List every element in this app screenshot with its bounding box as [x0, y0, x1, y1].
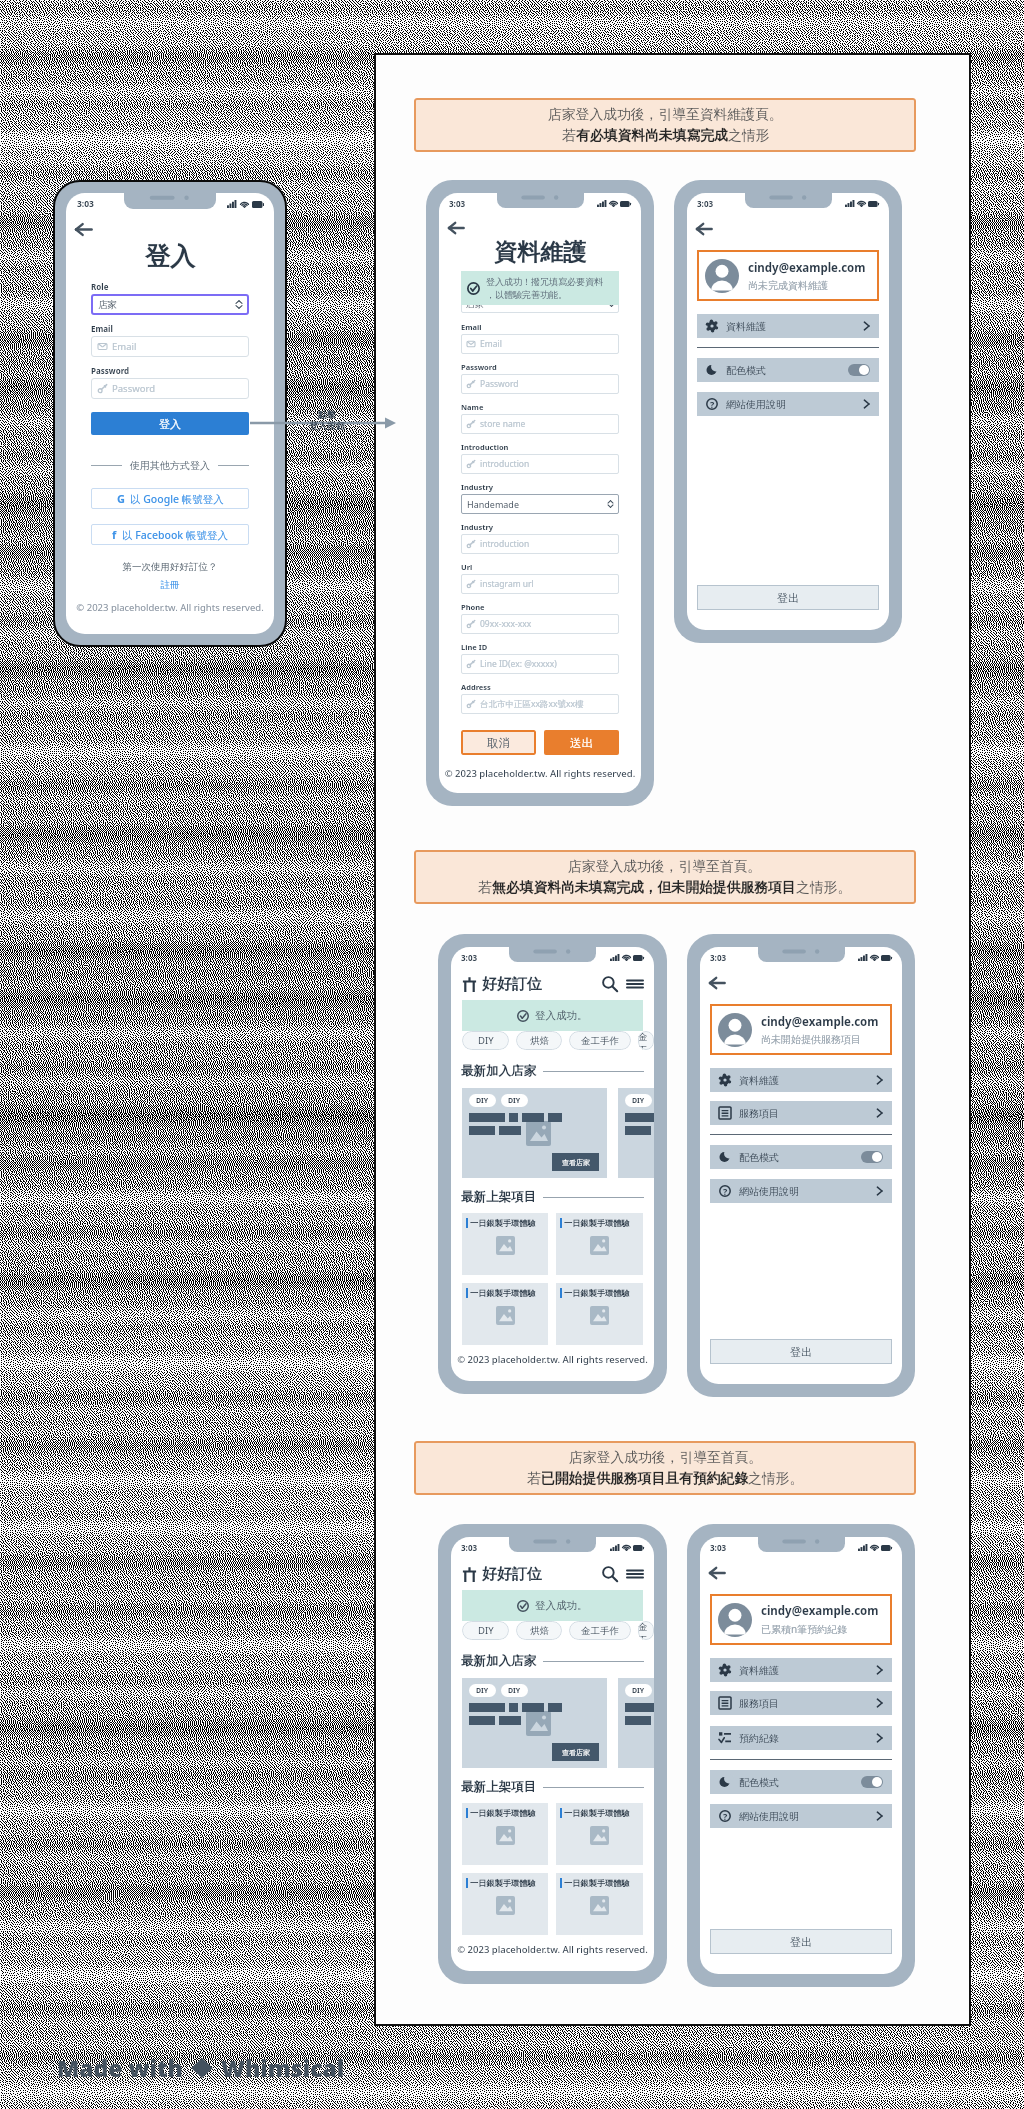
button[interactable]: 註冊 — [91, 579, 249, 591]
button[interactable]: 登出 — [697, 585, 879, 610]
button[interactable]: Search — [602, 1566, 618, 1582]
button[interactable]: introduction — [461, 534, 619, 554]
button[interactable]: 查看店家 — [552, 1743, 599, 1761]
staticText: 3:03 — [449, 198, 466, 209]
staticText: 若 — [478, 879, 492, 896]
button[interactable]: DIY — [462, 1621, 509, 1640]
button[interactable]: 登出 — [710, 1929, 892, 1954]
staticText: 已累積n筆預約紀錄 — [761, 1622, 848, 1636]
button[interactable]: 烘焙 — [516, 1621, 562, 1640]
button[interactable]: Email — [91, 336, 249, 357]
button[interactable]: 台北市中正區xx路xx號xx樓 — [461, 694, 619, 714]
button[interactable]: 09xx-xxx-xxx — [461, 614, 619, 634]
staticText: 網站使用說明 — [739, 1810, 799, 1823]
button[interactable]: introduction — [461, 454, 619, 474]
staticText: Password — [112, 382, 155, 395]
button[interactable]: 一日銀製手環體驗 — [462, 1803, 548, 1865]
button[interactable]: 店家 — [91, 294, 249, 315]
button[interactable]: Handemade — [461, 494, 619, 514]
button[interactable]: 一日銀製手環體驗 — [462, 1283, 548, 1345]
button[interactable]: 一日銀製手環體驗 — [556, 1873, 643, 1935]
button[interactable]: Search — [602, 976, 618, 992]
staticText: 資料維護 — [726, 320, 766, 333]
staticText: DIY — [632, 1686, 645, 1696]
button[interactable]: Back — [448, 217, 469, 238]
button[interactable]: Password — [91, 378, 249, 399]
button[interactable]: ? — [710, 1179, 892, 1203]
staticText: 服務項目 — [739, 1697, 779, 1710]
button[interactable]: instagram url — [461, 574, 619, 594]
staticText: 網站使用說明 — [726, 398, 786, 411]
staticText: Made with — [57, 2052, 183, 2083]
button[interactable]: Menu — [627, 976, 643, 992]
staticText: Phone — [461, 602, 485, 612]
button[interactable]: 登入 — [91, 412, 249, 435]
button[interactable]: 一日銀製手環體驗 — [556, 1283, 643, 1345]
button[interactable]: Password — [461, 374, 619, 394]
button[interactable]: 配色模式 — [710, 1145, 892, 1169]
button[interactable]: DIY — [462, 1678, 607, 1768]
button[interactable]: Line ID(ex: @xxxxx) — [461, 654, 619, 674]
button[interactable]: f — [91, 524, 249, 545]
button[interactable]: 查看店家 — [552, 1153, 599, 1171]
staticText: 查看店家 — [562, 1748, 590, 1757]
button[interactable]: 資料維護 — [697, 314, 879, 338]
button[interactable]: DIY — [618, 1088, 654, 1178]
button[interactable]: 取消 — [461, 730, 536, 755]
button[interactable]: 服務項目 — [710, 1691, 892, 1715]
staticText: 店家登入成功後，引導至首頁。 — [568, 858, 762, 875]
button[interactable]: G — [91, 488, 249, 509]
button[interactable]: Menu — [627, 1566, 643, 1582]
staticText: 3:03 — [710, 1542, 727, 1553]
staticText: 台北市中正區xx路xx號xx樓 — [480, 698, 584, 710]
button[interactable]: 配色模式 — [697, 358, 879, 382]
button[interactable]: 烘焙 — [516, 1031, 562, 1050]
staticText: 尚未完成資料維護 — [748, 279, 828, 292]
button[interactable]: Back — [696, 218, 717, 239]
button[interactable]: store name — [461, 414, 619, 434]
staticText: DIY — [632, 1096, 645, 1106]
staticText: 使用其他方式登入 — [130, 459, 210, 472]
staticText: 3:03 — [461, 952, 478, 963]
staticText: 一日銀製手環體驗 — [470, 1218, 536, 1228]
staticText: store name — [480, 418, 526, 430]
button[interactable]: DIY — [618, 1678, 654, 1768]
staticText: 資料維護 — [739, 1074, 779, 1087]
button[interactable]: 金工手作 — [569, 1031, 631, 1050]
button[interactable]: 登出 — [710, 1339, 892, 1364]
button[interactable]: 送出 — [544, 730, 619, 755]
button[interactable]: cindy@example.com — [697, 250, 879, 301]
button[interactable]: Back — [709, 972, 730, 993]
button[interactable]: ? — [710, 1804, 892, 1828]
button[interactable]: Back — [75, 218, 97, 240]
button[interactable]: cindy@example.com — [710, 1004, 892, 1055]
staticText: 已開始提供服務項目且有預約紀錄 — [541, 1470, 748, 1487]
button[interactable]: 服務項目 — [710, 1101, 892, 1125]
button[interactable]: cindy@example.com — [710, 1594, 892, 1645]
staticText: Email — [91, 323, 113, 334]
staticText: 之情形。 — [748, 1470, 804, 1487]
staticText: introduction — [480, 458, 530, 470]
button[interactable]: 一日銀製手環體驗 — [462, 1873, 548, 1935]
staticText: Line ID(ex: @xxxxx) — [480, 658, 557, 670]
button[interactable]: 金工手作 — [638, 1031, 654, 1050]
staticText: 一日銀製手環體驗 — [470, 1878, 536, 1888]
button[interactable]: 預約紀錄 — [710, 1726, 892, 1750]
staticText: DIY — [478, 1034, 494, 1047]
button[interactable]: 一日銀製手環體驗 — [556, 1213, 643, 1275]
button[interactable]: Email — [461, 334, 619, 354]
button[interactable]: 金工手作 — [638, 1621, 654, 1640]
button[interactable]: DIY — [462, 1031, 509, 1050]
button[interactable]: DIY — [462, 1088, 607, 1178]
staticText: 好好訂位 — [482, 1565, 542, 1584]
button[interactable]: 配色模式 — [710, 1770, 892, 1794]
button[interactable]: 資料維護 — [710, 1068, 892, 1092]
button[interactable]: ? — [697, 392, 879, 416]
staticText: cindy@example.com — [761, 1014, 879, 1030]
button[interactable]: 一日銀製手環體驗 — [462, 1213, 548, 1275]
button[interactable]: Back — [709, 1562, 730, 1583]
staticText: 若 — [562, 127, 576, 144]
button[interactable]: 一日銀製手環體驗 — [556, 1803, 643, 1865]
button[interactable]: 資料維護 — [710, 1658, 892, 1682]
button[interactable]: 金工手作 — [569, 1621, 631, 1640]
